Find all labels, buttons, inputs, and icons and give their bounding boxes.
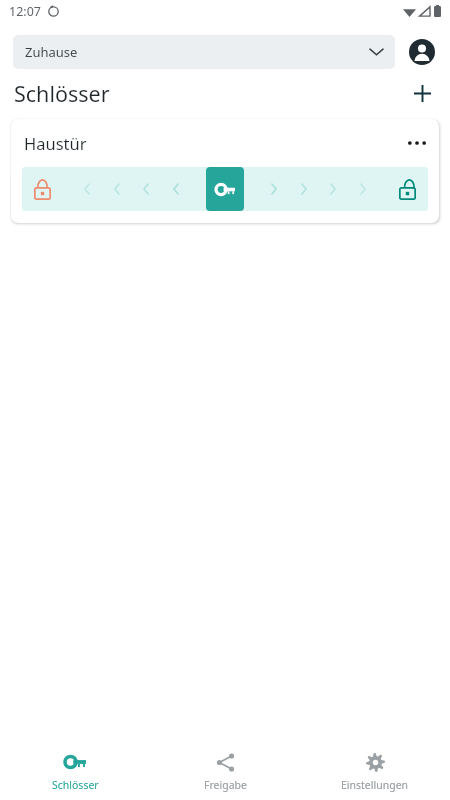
staticText: Haustür — [24, 132, 87, 154]
button[interactable]: Zuhause — [13, 35, 395, 69]
button[interactable]: Haustür — [11, 119, 439, 223]
staticText: Schlösser — [14, 79, 110, 108]
button[interactable]: Schloss betätigen — [206, 167, 244, 211]
button[interactable]: Konto — [407, 37, 437, 67]
staticText: Einstellungen — [341, 778, 409, 792]
staticText: Schlösser — [52, 778, 99, 792]
button[interactable]: Schloss-Schieberegler — [22, 167, 428, 211]
button[interactable]: Schlösser — [0, 742, 150, 800]
button[interactable]: Schloss hinzufügen — [406, 77, 438, 109]
button[interactable]: Freigabe — [150, 742, 300, 800]
staticText: Zuhause — [25, 43, 370, 61]
button[interactable]: Einstellungen — [300, 742, 450, 800]
staticText: 12:07 — [9, 3, 41, 20]
button[interactable]: Weitere Optionen — [401, 127, 433, 159]
staticText: Freigabe — [204, 778, 247, 792]
